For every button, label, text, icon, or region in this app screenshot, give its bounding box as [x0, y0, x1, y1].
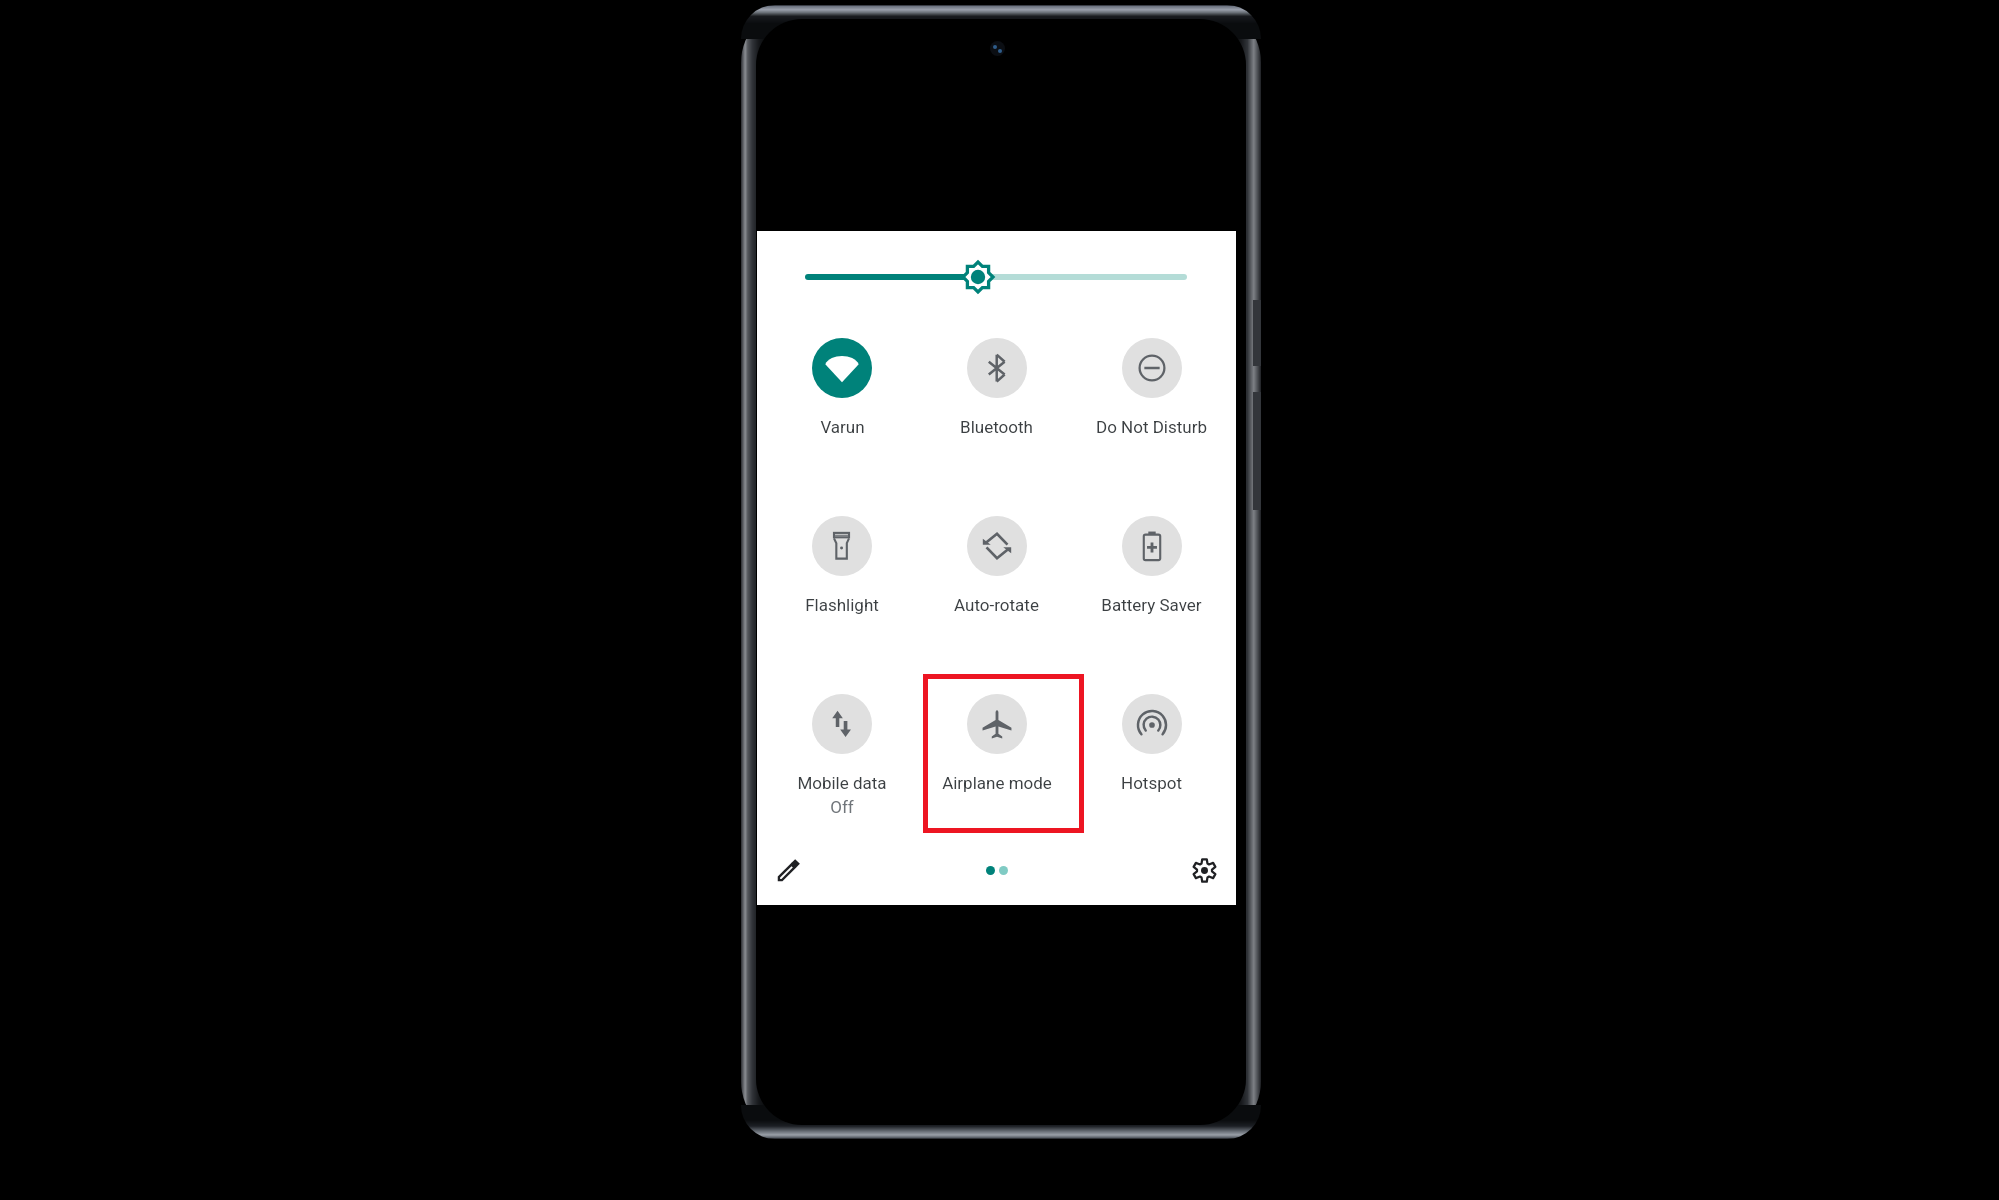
staticText: Flashlight	[805, 595, 879, 615]
button[interactable]: Varun	[764, 320, 919, 480]
button[interactable]: Flashlight	[764, 498, 919, 658]
button[interactable]: Battery Saver	[1074, 498, 1229, 658]
staticText: Off	[830, 797, 854, 817]
staticText: Hotspot	[1121, 773, 1182, 793]
button[interactable]: Mobile data	[764, 676, 919, 836]
button[interactable]: Auto-rotate	[919, 498, 1074, 658]
staticText: Bluetooth	[960, 417, 1033, 437]
button[interactable]: Settings	[1180, 846, 1228, 894]
button[interactable]: Page 1 of 2	[974, 854, 1020, 887]
staticText: Battery Saver	[1101, 595, 1202, 615]
button[interactable]: Airplane mode	[919, 676, 1074, 836]
button[interactable]: Edit quick settings	[765, 846, 813, 894]
staticText: Varun	[820, 417, 865, 437]
staticText: Mobile data	[797, 773, 887, 793]
button[interactable]: Bluetooth	[919, 320, 1074, 480]
button[interactable]: Brightness	[797, 255, 1195, 299]
staticText: Auto-rotate	[954, 595, 1039, 615]
staticText: Do Not Disturb	[1096, 417, 1207, 437]
button[interactable]: Hotspot	[1074, 676, 1229, 836]
button[interactable]: Do Not Disturb	[1074, 320, 1229, 480]
staticText: Airplane mode	[942, 773, 1052, 793]
